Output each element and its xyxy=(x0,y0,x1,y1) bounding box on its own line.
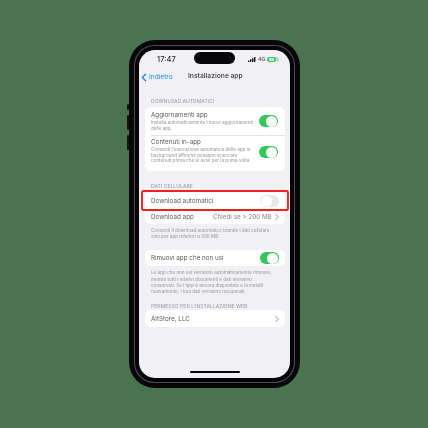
staticText: Installa automaticamente i nuovi aggiorn… xyxy=(151,120,258,131)
button[interactable]: Download automatici xyxy=(151,192,279,209)
staticText: Aggiornamenti app xyxy=(151,111,208,119)
staticText: Chiedi se > 200 MB xyxy=(213,213,272,221)
other: Evidenziazione xyxy=(142,191,288,210)
staticText: DOWNLOAD AUTOMATICI xyxy=(151,98,215,104)
staticText: Le app che non usi verranno automaticame… xyxy=(151,270,277,294)
button[interactable]: Disattiva xyxy=(259,115,278,127)
staticText: 17:47 xyxy=(157,55,176,64)
staticText: AltStore, LLC xyxy=(151,315,190,323)
button[interactable]: Indietro xyxy=(142,72,178,82)
staticText: 4G xyxy=(258,56,266,62)
staticText: 92 xyxy=(269,57,274,62)
staticText: Download app xyxy=(151,213,194,221)
button[interactable]: Disattiva xyxy=(260,252,279,264)
staticText: Indietro xyxy=(149,73,173,81)
button[interactable]: Download app xyxy=(151,209,279,225)
button[interactable]: AltStore, LLC xyxy=(151,310,279,327)
staticText: Consenti l'esecuzione automatica delle a… xyxy=(151,147,258,163)
button[interactable]: Disattiva xyxy=(259,146,278,158)
button[interactable]: Rimuovi app che non usi xyxy=(151,250,279,266)
button[interactable]: Attiva xyxy=(260,195,279,207)
staticText: Consenti il download automatico tramite … xyxy=(151,228,278,239)
staticText: Contenuti in-app xyxy=(151,138,201,146)
staticText: Download automatici xyxy=(151,197,214,205)
staticText: Installazione app xyxy=(188,72,243,80)
staticText: PERMESSO PER L'INSTALLAZIONE WEB xyxy=(151,303,248,309)
staticText: DATI CELLULARE xyxy=(151,183,193,189)
staticText: Rimuovi app che non usi xyxy=(151,254,224,262)
